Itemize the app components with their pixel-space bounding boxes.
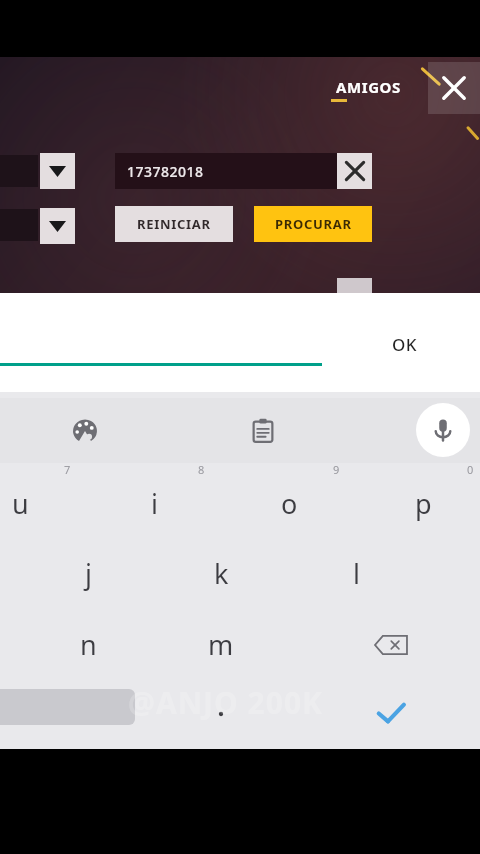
staticText: @ANJO 200K xyxy=(128,682,323,723)
button[interactable]: REINICIAR xyxy=(115,206,233,242)
staticText: REINICIAR xyxy=(137,215,211,233)
button[interactable] xyxy=(190,686,252,742)
staticText: AMIGOS xyxy=(336,77,401,97)
staticText: m xyxy=(208,626,234,663)
button[interactable]: Limpar xyxy=(337,153,372,189)
staticText: 7 xyxy=(64,462,71,477)
button[interactable]: Entrada de voz xyxy=(416,403,470,457)
button[interactable]: i xyxy=(121,471,187,535)
staticText: OK xyxy=(392,333,418,356)
staticText: i xyxy=(151,485,158,522)
staticText: j xyxy=(85,555,92,592)
staticText: u xyxy=(12,485,29,522)
button[interactable]: OK xyxy=(366,320,444,368)
button[interactable]: Selecionar xyxy=(40,153,75,189)
staticText: o xyxy=(281,485,298,522)
button[interactable]: n xyxy=(55,612,121,676)
staticText: l xyxy=(353,555,360,592)
button[interactable]: AMIGOS xyxy=(330,70,406,104)
staticText: 0 xyxy=(467,462,474,477)
staticText: n xyxy=(80,626,97,663)
button[interactable]: j xyxy=(55,541,121,605)
button[interactable]: Área de transferência xyxy=(235,403,291,459)
button[interactable]: p xyxy=(390,471,456,535)
staticText: p xyxy=(415,485,432,522)
button[interactable]: Temas xyxy=(57,403,113,459)
button[interactable]: m xyxy=(188,612,254,676)
button[interactable]: Apagar xyxy=(355,614,427,676)
staticText: 9 xyxy=(333,462,340,477)
button[interactable]: k xyxy=(188,541,254,605)
button[interactable]: Confirmar xyxy=(357,684,425,742)
staticText: PROCURAR xyxy=(275,215,352,233)
staticText: 8 xyxy=(198,462,205,477)
button[interactable]: Selecionar xyxy=(40,208,75,244)
staticText: 173782018 xyxy=(127,162,204,181)
button[interactable]: o xyxy=(256,471,322,535)
button[interactable]: 173782018 xyxy=(115,153,337,189)
button[interactable]: l xyxy=(323,541,389,605)
button[interactable]: PROCURAR xyxy=(254,206,372,242)
staticText: k xyxy=(214,555,229,592)
button[interactable]: Fechar xyxy=(428,62,480,114)
button[interactable]: u xyxy=(0,471,53,535)
